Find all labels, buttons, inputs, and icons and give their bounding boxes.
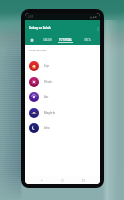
staticText: TUTORIAL — [59, 38, 72, 42]
button[interactable]: More options — [94, 25, 100, 32]
staticText: Gabay sa Salah — [29, 26, 51, 30]
button[interactable]: Asr — [25, 89, 100, 105]
staticText: Isha — [44, 126, 50, 130]
button[interactable]: TUTORIAL — [56, 34, 75, 46]
staticText: Dhuhr — [44, 80, 53, 84]
button[interactable]: Back — [37, 176, 46, 184]
button[interactable]: Home — [25, 34, 38, 46]
staticText: 2:05 — [28, 15, 34, 19]
button[interactable]: Dhuhr — [25, 74, 100, 90]
staticText: Fajr — [44, 64, 49, 68]
staticText: SALAH — [43, 38, 52, 42]
staticText: Pumili ng Salah — [29, 48, 47, 51]
staticText: ▲ ◆ ▮ — [90, 15, 97, 19]
button[interactable]: Fajr — [25, 58, 100, 74]
button[interactable]: DU'A — [75, 34, 100, 46]
button[interactable]: Gabay sa Salah — [29, 25, 51, 31]
staticText: DU'A — [84, 38, 91, 42]
button[interactable]: Maghrib — [25, 105, 100, 121]
staticText: Asr — [44, 95, 49, 99]
button[interactable]: Home — [58, 176, 67, 184]
staticText: Maghrib — [44, 111, 56, 115]
button[interactable]: Isha — [25, 120, 100, 136]
button[interactable]: SALAH — [38, 34, 56, 46]
button[interactable]: Recents — [79, 176, 88, 184]
